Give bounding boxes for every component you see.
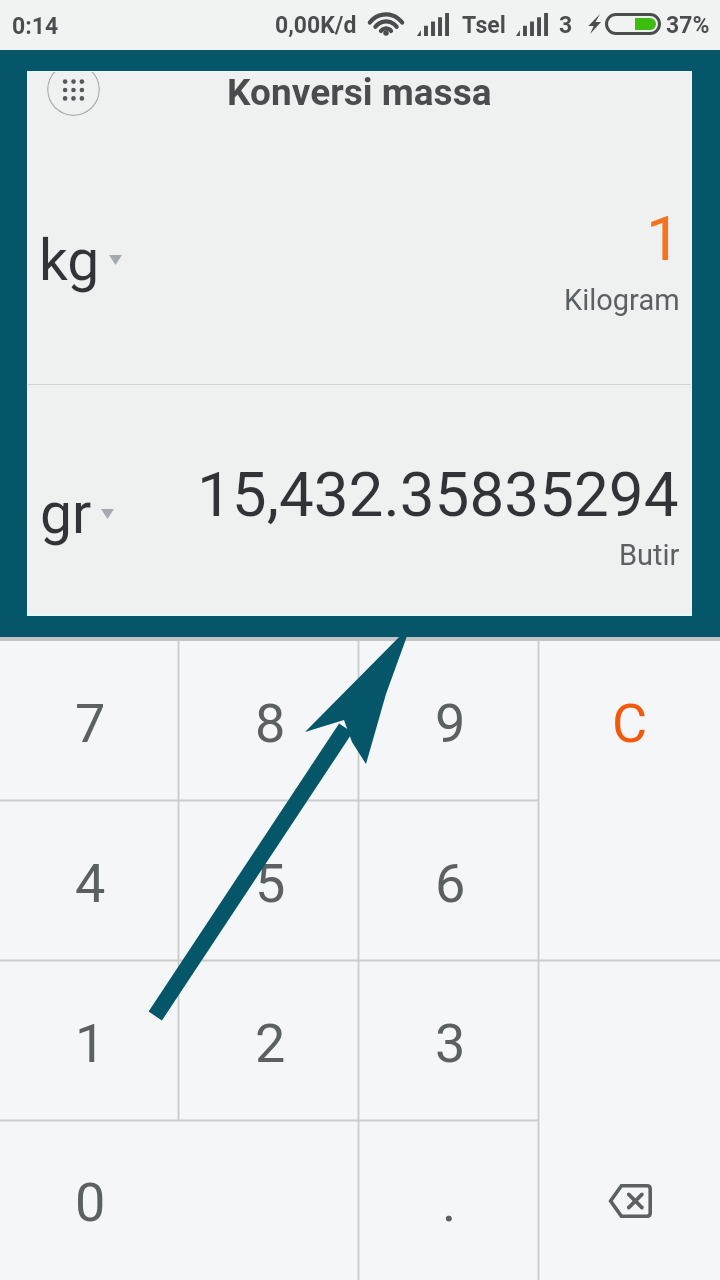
button[interactable]: 3 <box>360 961 540 1121</box>
button[interactable]: 1 <box>0 961 180 1121</box>
button[interactable]: Change source unit <box>30 222 140 294</box>
button[interactable]: 2 <box>180 961 360 1121</box>
button[interactable]: 4 <box>0 801 180 961</box>
staticText: 5 <box>255 852 286 915</box>
button[interactable]: Change target unit <box>30 475 134 545</box>
staticText: 15,432.35835294 <box>197 458 679 531</box>
button[interactable]: 7 <box>0 641 180 801</box>
staticText: 1 <box>646 202 681 275</box>
staticText: 0,00K/d <box>275 12 357 39</box>
button[interactable]: 5 <box>180 801 360 961</box>
button[interactable]: Backspace <box>539 1121 720 1280</box>
staticText: 1 <box>75 1012 106 1075</box>
staticText: C <box>612 692 648 755</box>
staticText: 3 <box>559 12 573 39</box>
button[interactable]: C <box>540 641 720 801</box>
staticText: 2 <box>255 1012 286 1075</box>
staticText: 6 <box>435 852 466 915</box>
staticText: 4 <box>75 852 106 915</box>
staticText: 0:14 <box>12 13 59 40</box>
button[interactable] <box>540 801 720 961</box>
staticText: 0 <box>75 1171 106 1234</box>
button[interactable]: 6 <box>360 801 540 961</box>
staticText: Konversi massa <box>227 71 492 114</box>
staticText: 37% <box>666 12 710 39</box>
button[interactable] <box>180 1121 359 1280</box>
button[interactable]: 8 <box>180 641 360 801</box>
staticText: gr <box>40 480 92 547</box>
button[interactable]: 9 <box>360 641 540 801</box>
staticText: Kilogram <box>564 283 680 317</box>
staticText: Butir <box>619 538 680 572</box>
staticText: . <box>442 1171 457 1234</box>
button[interactable]: 0 <box>0 1121 180 1280</box>
staticText: 9 <box>435 692 466 755</box>
staticText: kg <box>39 227 100 294</box>
staticText: 7 <box>75 692 106 755</box>
staticText: 3 <box>435 1012 466 1075</box>
button[interactable]: . <box>359 1121 539 1280</box>
staticText: 8 <box>255 692 286 755</box>
button[interactable]: Change target unit <box>28 385 691 614</box>
button[interactable]: Apps <box>47 72 100 116</box>
staticText: Tsel <box>462 12 506 39</box>
button[interactable]: Change source unit <box>28 72 691 384</box>
